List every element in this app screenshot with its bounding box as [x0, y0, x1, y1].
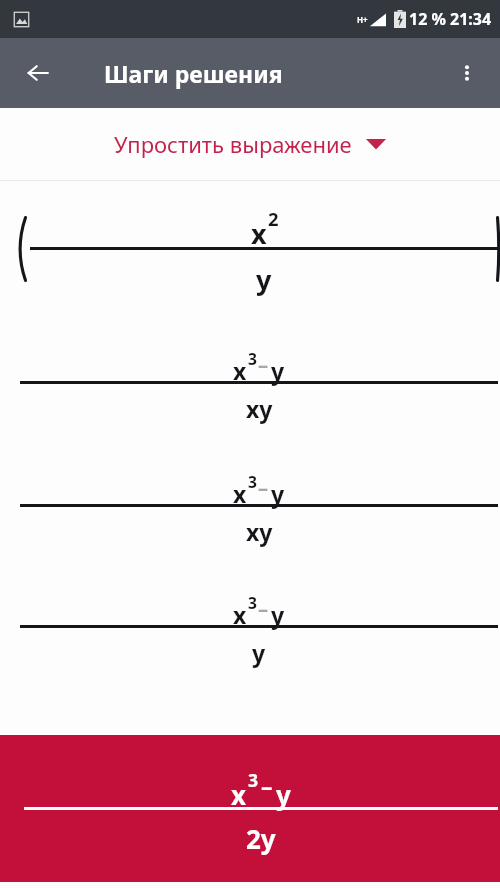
staticText: x — [251, 215, 267, 252]
staticText: y — [276, 777, 291, 812]
button[interactable]: More options — [444, 50, 490, 96]
staticText: xy — [246, 516, 273, 547]
button[interactable]: x — [0, 324, 500, 447]
staticText: y — [271, 355, 285, 386]
staticText: y — [271, 599, 285, 630]
staticText: – — [258, 594, 269, 622]
staticText: 12 % 21:34 — [409, 8, 492, 30]
staticText: 2 — [268, 206, 279, 231]
staticText: x — [233, 599, 247, 630]
staticText: – — [261, 771, 273, 802]
staticText: 2y — [246, 821, 276, 856]
staticText: Шаги решения — [104, 58, 283, 89]
button[interactable]: Back — [14, 49, 62, 97]
staticText: y — [252, 637, 266, 668]
button[interactable]: x — [0, 447, 500, 570]
button[interactable]: x — [0, 570, 500, 687]
staticText: x — [231, 777, 247, 812]
button[interactable]: x — [0, 735, 500, 882]
staticText: H+ — [357, 14, 368, 25]
staticText: y — [256, 261, 272, 298]
staticText: 3 — [248, 471, 257, 492]
staticText: y — [271, 478, 285, 509]
button[interactable]: x — [0, 181, 500, 324]
staticText: 3 — [248, 768, 259, 792]
staticText: Упростить выражение — [114, 129, 352, 159]
staticText: 3 — [248, 348, 257, 369]
staticText: x — [233, 355, 247, 386]
button[interactable]: Упростить выражение — [0, 108, 500, 180]
staticText: – — [258, 473, 269, 501]
staticText: xy — [246, 393, 273, 424]
staticText: – — [258, 350, 269, 378]
staticText: x — [233, 478, 247, 509]
staticText: 3 — [248, 592, 257, 613]
